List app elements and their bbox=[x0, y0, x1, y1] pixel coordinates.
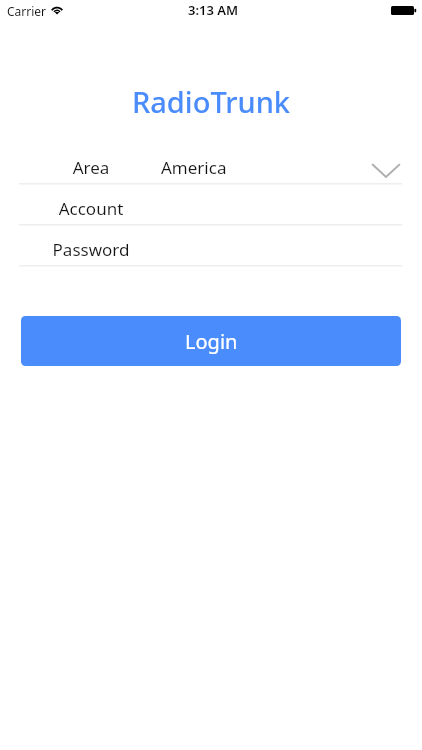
button[interactable]: Account bbox=[0, 184, 422, 224]
staticText: RadioTrunk bbox=[0, 82, 422, 121]
staticText: America bbox=[161, 156, 227, 179]
button[interactable]: Select area bbox=[366, 149, 406, 183]
staticText: Password bbox=[0, 238, 182, 261]
button[interactable]: Login bbox=[21, 316, 401, 366]
button[interactable]: Area bbox=[0, 143, 422, 183]
staticText: Login bbox=[185, 328, 238, 355]
staticText: Account bbox=[0, 197, 182, 220]
button[interactable]: Password bbox=[0, 225, 422, 265]
staticText: 3:13 AM bbox=[188, 1, 239, 19]
staticText: Area bbox=[0, 156, 182, 179]
staticText: Carrier bbox=[7, 3, 47, 19]
